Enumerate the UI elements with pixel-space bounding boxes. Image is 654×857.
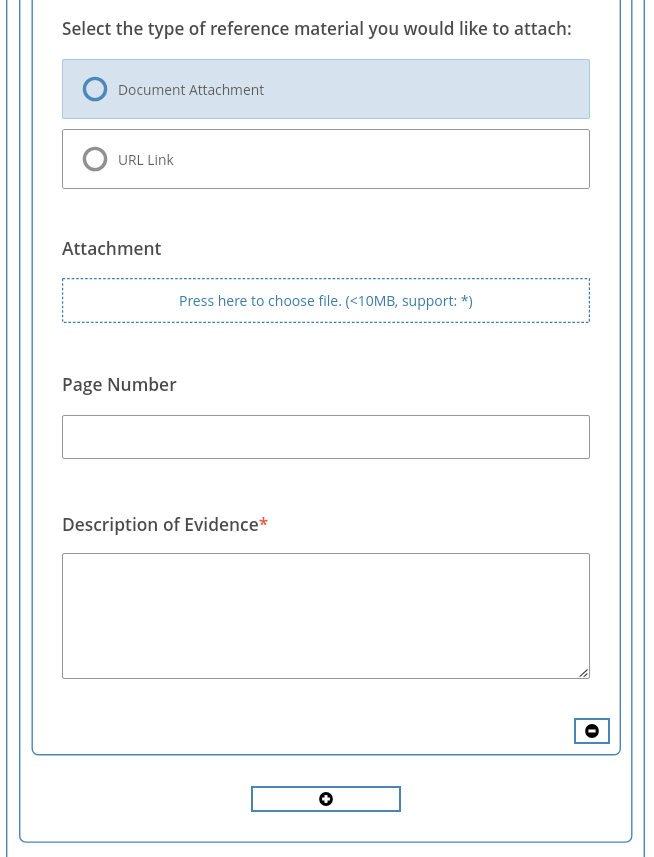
button[interactable]: Remove this reference material — [574, 718, 610, 744]
button[interactable]: Press here to choose file. (<10MB, suppo… — [62, 278, 590, 323]
button[interactable]: Description of Evidence input — [62, 553, 590, 679]
button[interactable]: URL Link — [62, 129, 590, 189]
staticText: Press here to choose file. (<10MB, suppo… — [179, 291, 473, 310]
staticText: Description of Evidence* — [62, 512, 269, 536]
button[interactable]: Add another reference material — [251, 786, 401, 812]
staticText: Page Number — [62, 372, 177, 396]
staticText: Attachment — [62, 236, 162, 260]
staticText: Select the type of reference material yo… — [62, 17, 572, 40]
staticText: URL Link — [118, 150, 174, 169]
button[interactable]: Document Attachment — [62, 59, 590, 119]
staticText: Document Attachment — [118, 80, 265, 99]
button[interactable]: Page Number input — [62, 415, 590, 459]
